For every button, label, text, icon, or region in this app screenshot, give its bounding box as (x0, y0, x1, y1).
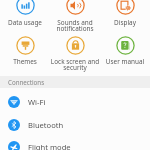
staticText: Sounds and notifications (50, 18, 100, 33)
button[interactable]: User manual (100, 0, 150, 73)
staticText: Wi-Fi (28, 97, 46, 107)
staticText: Themes (0, 57, 50, 66)
button[interactable]: Bluetooth (0, 113, 150, 136)
staticText: Display (100, 18, 150, 27)
button[interactable]: Wi-Fi (0, 90, 150, 113)
staticText: Bluetooth (28, 120, 64, 130)
button[interactable]: Lock screen and security (50, 0, 100, 73)
button[interactable]: Display (100, 0, 150, 34)
button[interactable]: Data usage (0, 0, 50, 34)
button[interactable]: Sounds and notifications (50, 0, 100, 34)
button[interactable]: Themes (0, 0, 50, 73)
staticText: Lock screen and security (50, 57, 100, 72)
staticText: Connections (8, 78, 45, 86)
staticText: Flight mode (28, 142, 71, 150)
button[interactable]: Flight mode (0, 135, 150, 150)
staticText: Data usage (0, 18, 50, 27)
staticText: User manual (100, 57, 150, 66)
